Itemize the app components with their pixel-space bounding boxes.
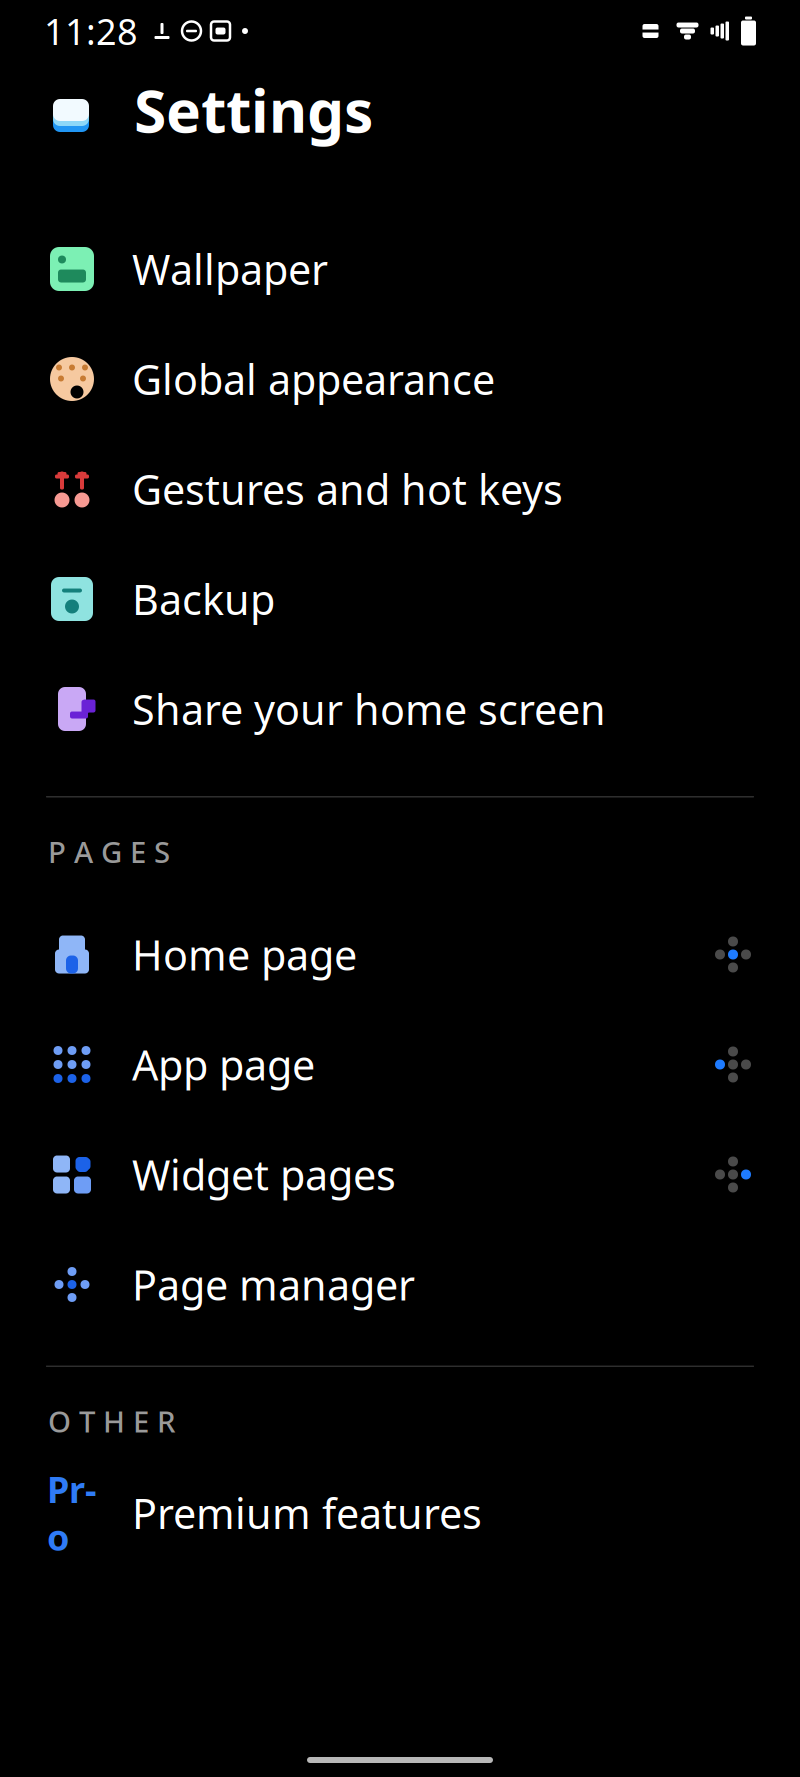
staticText: 11:28 bbox=[44, 7, 138, 55]
staticText: Widget pages bbox=[132, 1147, 396, 1202]
staticText: P A G E S bbox=[48, 832, 170, 871]
staticText: Gestures and hot keys bbox=[132, 462, 563, 516]
button[interactable]: App page bbox=[0, 1009, 800, 1119]
button[interactable]: Backup bbox=[0, 544, 800, 654]
staticText: Backup bbox=[132, 572, 275, 626]
staticText: Settings bbox=[134, 71, 373, 149]
staticText: Premium features bbox=[132, 1486, 482, 1540]
staticText: Share your home screen bbox=[132, 682, 606, 736]
button[interactable]: Gestures and hot keys bbox=[0, 434, 800, 544]
staticText: Home page bbox=[132, 927, 357, 982]
button[interactable]: Pro bbox=[0, 1465, 800, 1561]
button[interactable]: Global appearance bbox=[0, 324, 800, 434]
button[interactable]: Home page bbox=[0, 899, 800, 1009]
button[interactable]: Wallpaper bbox=[0, 214, 800, 324]
button[interactable]: Page manager bbox=[0, 1229, 800, 1339]
staticText: Global appearance bbox=[132, 352, 495, 406]
staticText: App page bbox=[132, 1037, 315, 1092]
button[interactable]: Widget pages bbox=[0, 1119, 800, 1229]
staticText: Pro bbox=[47, 1465, 97, 1561]
staticText: O T H E R bbox=[48, 1401, 176, 1440]
button[interactable]: Share your home screen bbox=[0, 654, 800, 764]
staticText: Page manager bbox=[132, 1257, 415, 1312]
staticText: Wallpaper bbox=[132, 242, 328, 296]
